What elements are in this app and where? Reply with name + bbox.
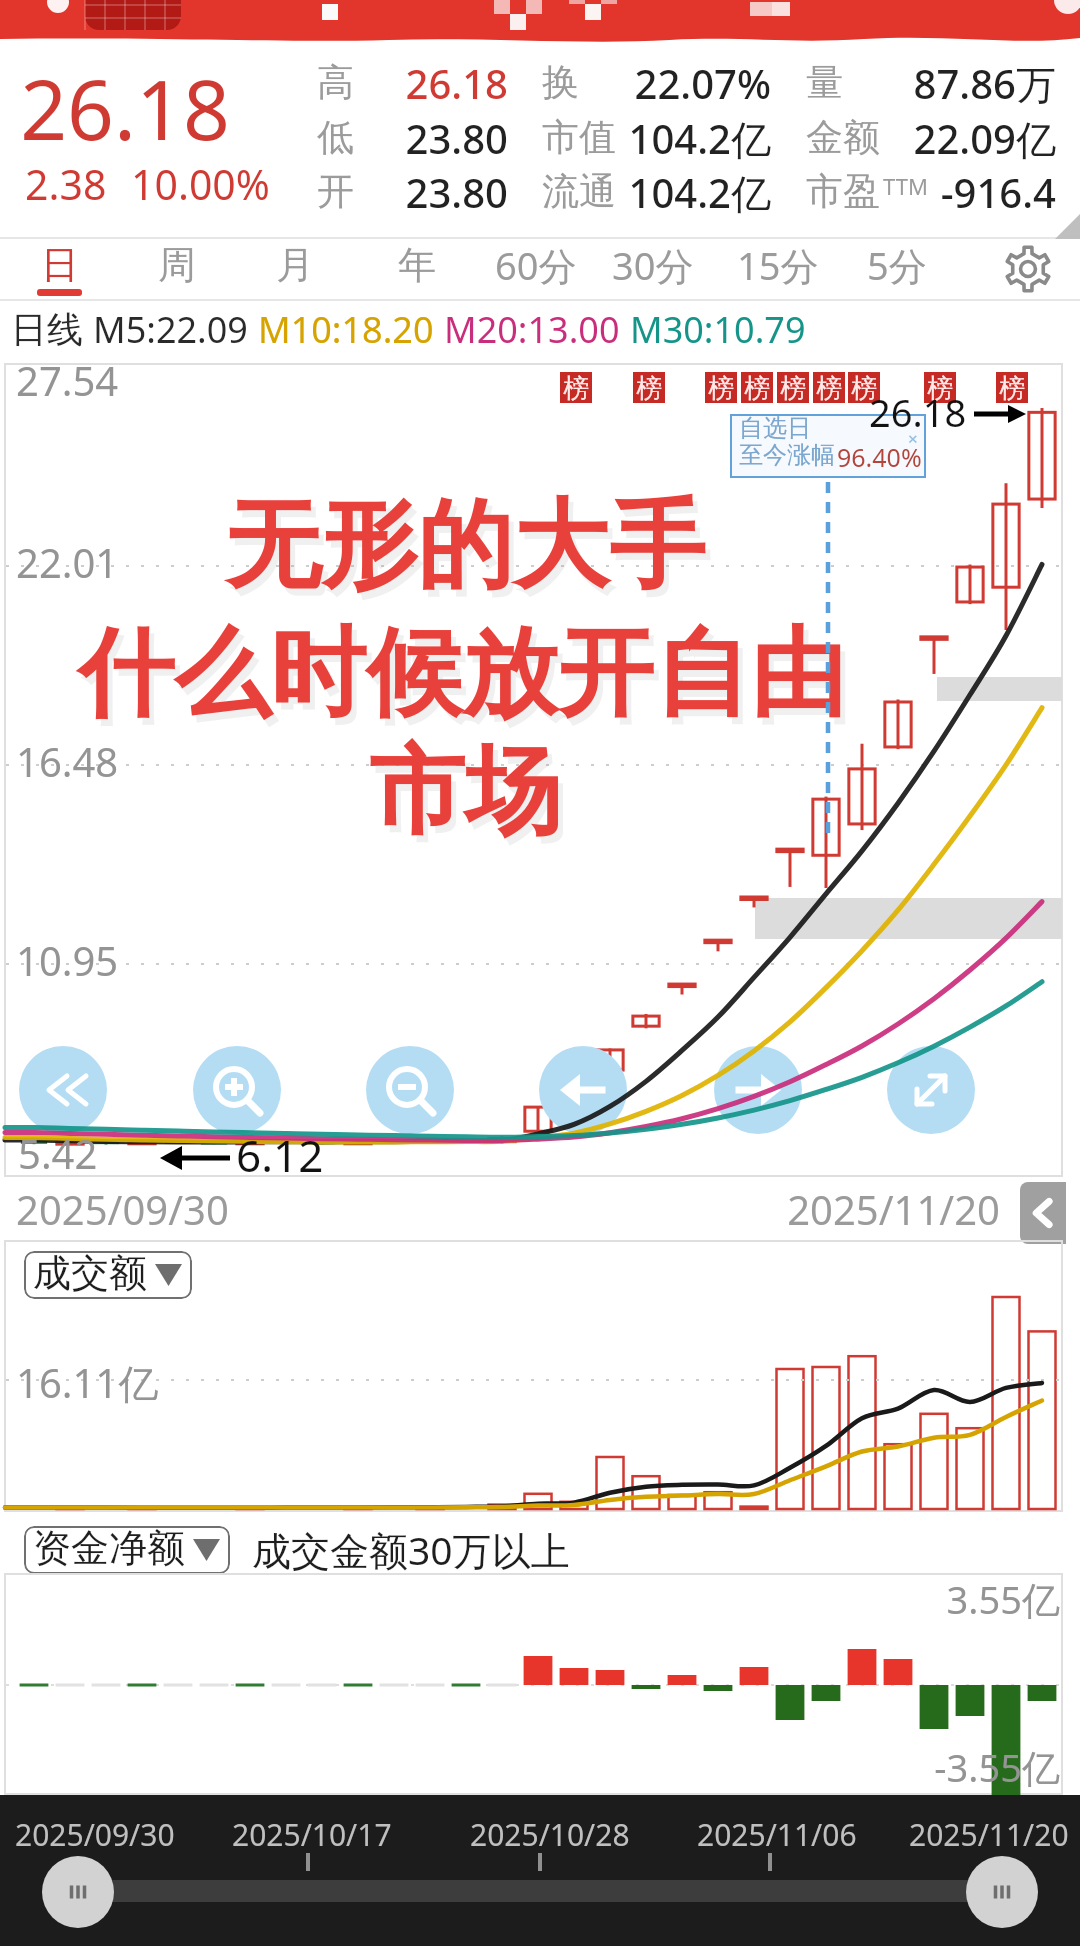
staticText: 高	[317, 59, 354, 106]
staticText: 10.95	[16, 933, 119, 987]
staticText: 6.12	[236, 1125, 324, 1185]
staticText: 2.38	[25, 156, 107, 212]
staticText: 2025/11/20	[680, 1182, 1000, 1236]
staticText: 市值	[542, 114, 616, 161]
staticText: 23.80	[188, 165, 508, 219]
staticText: 什么时候放开自由	[0, 621, 1007, 742]
staticText: 无形的大手	[0, 486, 1005, 607]
staticText: 换	[542, 59, 579, 106]
staticText: 26.18	[0, 52, 275, 164]
staticText: 榜	[816, 372, 842, 403]
staticText: 自选日	[739, 413, 811, 443]
staticText: 87.86万	[736, 56, 1056, 111]
button[interactable]: Scroll left	[42, 1856, 114, 1928]
staticText: 2025/09/30	[16, 1182, 229, 1236]
button[interactable]: 月	[237, 237, 353, 301]
staticText: 日	[41, 241, 79, 289]
staticText: 27.54	[16, 353, 119, 407]
staticText: TTM	[883, 171, 928, 201]
button[interactable]: 30分	[595, 237, 711, 301]
button[interactable]: 成交额	[33, 1251, 182, 1299]
staticText: M30:10.79	[630, 305, 806, 354]
button[interactable]: 年	[359, 237, 475, 301]
staticText: 2025/09/30	[15, 1814, 175, 1855]
staticText: ×	[908, 427, 918, 450]
button[interactable]: 资金净额	[33, 1526, 220, 1574]
button[interactable]: Zoom out	[366, 1046, 454, 1134]
staticText: 成交额	[33, 1251, 147, 1297]
button[interactable]: Previous page	[19, 1046, 107, 1134]
staticText: 低	[317, 114, 354, 161]
button[interactable]: 周	[119, 237, 235, 301]
staticText: 2025/11/06	[697, 1814, 857, 1855]
staticText: 流通	[542, 168, 616, 215]
staticText: 5分	[867, 239, 927, 291]
button[interactable]: 60分	[478, 237, 594, 301]
button[interactable]: Full screen	[887, 1046, 975, 1134]
button[interactable]: 15分	[720, 237, 836, 301]
staticText: 22.09亿	[736, 111, 1056, 166]
staticText: 16.11亿	[16, 1355, 159, 1410]
button[interactable]: 自选日	[730, 414, 926, 478]
staticText: 市盈	[806, 168, 880, 215]
staticText: 榜	[563, 372, 589, 403]
staticText: 无形的大手	[0, 493, 1010, 614]
staticText: -3.55亿	[740, 1741, 1060, 1793]
staticText: 2025/10/28	[470, 1814, 630, 1855]
staticText: 104.2亿	[451, 111, 771, 166]
staticText: -916.4	[736, 165, 1056, 219]
staticText: 22.07%	[451, 56, 771, 110]
staticText: 2025/10/17	[232, 1814, 392, 1855]
staticText: 榜	[744, 372, 770, 403]
staticText: 成交金额30万以上	[252, 1523, 570, 1576]
staticText: M10:18.20	[258, 305, 434, 354]
staticText: 15分	[737, 239, 819, 291]
staticText: M20:13.00	[444, 305, 620, 354]
button[interactable]: Settings	[975, 237, 1080, 301]
button[interactable]: Pan left	[539, 1046, 627, 1134]
staticText: 资金净额	[33, 1526, 185, 1572]
staticText: 日线	[11, 307, 83, 352]
staticText: 2025/11/20	[909, 1814, 1069, 1855]
staticText: 量	[806, 59, 843, 106]
button[interactable]: 5分	[839, 237, 955, 301]
staticText: 至今涨幅	[739, 440, 835, 470]
staticText: 3.55亿	[740, 1573, 1060, 1625]
staticText: 市场	[0, 732, 1005, 853]
button[interactable]: Zoom in	[193, 1046, 281, 1134]
staticText: 榜	[927, 372, 953, 403]
staticText: 榜	[636, 372, 662, 403]
staticText: 月	[276, 241, 314, 289]
button[interactable]: Pan right	[714, 1046, 802, 1134]
button[interactable]: 日	[2, 237, 118, 301]
staticText: 23.80	[188, 111, 508, 165]
staticText: 26.18	[188, 56, 508, 110]
staticText: 16.48	[16, 734, 119, 788]
staticText: 什么时候放开自由	[0, 614, 1002, 735]
staticText: 104.2亿	[451, 165, 771, 220]
staticText: 周	[158, 241, 196, 289]
staticText: 30分	[612, 239, 694, 291]
staticText: 市场	[0, 739, 1010, 860]
staticText: 榜	[851, 372, 877, 403]
button[interactable]: Scroll right	[966, 1856, 1038, 1928]
staticText: M5:22.09	[93, 305, 248, 354]
staticText: 榜	[780, 372, 806, 403]
staticText: 开	[317, 168, 354, 215]
staticText: 榜	[999, 372, 1025, 403]
staticText: 96.40%	[837, 440, 922, 474]
staticText: 榜	[708, 372, 734, 403]
staticText: 26.18	[869, 386, 967, 438]
staticText: 60分	[495, 239, 577, 291]
button[interactable]: Collapse panel	[1020, 1182, 1066, 1244]
staticText: 年	[398, 241, 436, 289]
staticText: 金额	[806, 114, 880, 161]
staticText: 5.42	[18, 1126, 98, 1180]
staticText: 22.01	[16, 535, 119, 589]
staticText: 10.00%	[131, 156, 270, 212]
